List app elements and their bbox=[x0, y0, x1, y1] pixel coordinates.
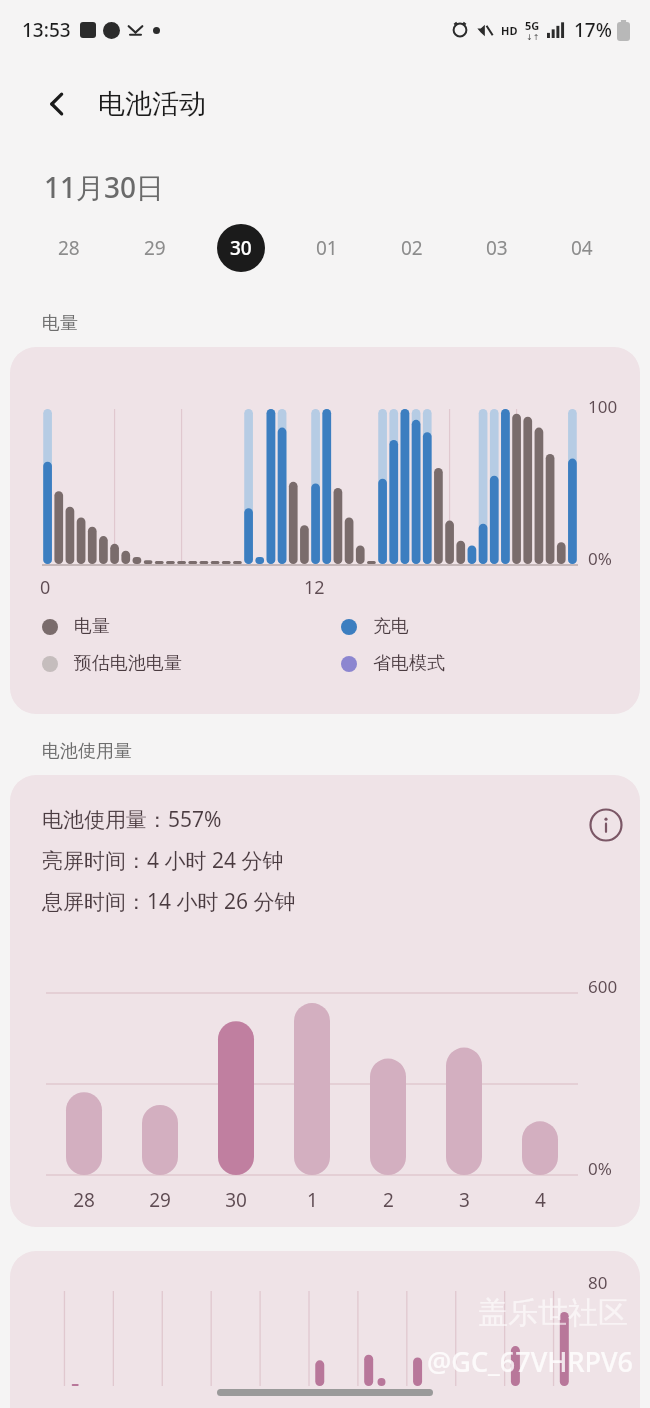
staticText: HD bbox=[501, 23, 518, 38]
button[interactable]: 80 bbox=[10, 1251, 640, 1408]
staticText: 省电模式 bbox=[373, 652, 445, 675]
button[interactable]: 28 bbox=[26, 216, 112, 280]
staticText: 亮屏时间：4 小时 24 分钟 bbox=[42, 846, 284, 875]
staticText: 3 bbox=[459, 1187, 470, 1213]
button[interactable]: Back bbox=[34, 81, 80, 127]
staticText: 0% bbox=[588, 547, 612, 570]
button[interactable]: 02 bbox=[369, 216, 454, 280]
staticText: 2 bbox=[383, 1187, 394, 1213]
staticText: 电池活动 bbox=[98, 87, 206, 121]
staticText: 5G bbox=[525, 18, 540, 33]
staticText: 02 bbox=[401, 235, 423, 261]
staticText: 1 bbox=[307, 1187, 318, 1213]
staticText: 盖乐世社区 bbox=[478, 1294, 628, 1332]
staticText: 28 bbox=[73, 1187, 95, 1213]
staticText: 04 bbox=[571, 235, 593, 261]
staticText: 息屏时间：14 小时 26 分钟 bbox=[42, 887, 296, 916]
button[interactable]: 01 bbox=[284, 216, 369, 280]
button[interactable]: 100 bbox=[10, 347, 640, 714]
staticText: 100 bbox=[588, 395, 618, 418]
staticText: 30 bbox=[230, 235, 252, 261]
staticText: ↓↑ bbox=[526, 33, 540, 42]
staticText: 11月30日 bbox=[44, 168, 165, 206]
button[interactable]: 30 bbox=[198, 216, 284, 280]
staticText: 预估电池电量 bbox=[74, 652, 182, 675]
staticText: @GC_67VHRPV6 bbox=[427, 1343, 634, 1380]
staticText: 17% bbox=[574, 17, 612, 43]
staticText: 80 bbox=[588, 1271, 608, 1294]
button[interactable]: 04 bbox=[539, 216, 624, 280]
staticText: 电池使用量 bbox=[42, 740, 132, 763]
staticText: 600 bbox=[588, 975, 618, 998]
staticText: 29 bbox=[149, 1187, 171, 1213]
staticText: 01 bbox=[316, 235, 338, 261]
staticText: 电池使用量：557% bbox=[42, 805, 222, 834]
staticText: 4 bbox=[535, 1187, 546, 1213]
staticText: 充电 bbox=[373, 615, 409, 638]
staticText: 30 bbox=[225, 1187, 247, 1213]
button[interactable]: 电池使用量：557% bbox=[10, 775, 640, 1227]
staticText: 28 bbox=[58, 235, 80, 261]
button[interactable]: 03 bbox=[454, 216, 539, 280]
button[interactable]: Info bbox=[582, 801, 630, 849]
staticText: 0 bbox=[40, 575, 51, 600]
staticText: 29 bbox=[144, 235, 166, 261]
button[interactable]: 29 bbox=[112, 216, 198, 280]
staticText: 03 bbox=[486, 235, 508, 261]
staticText: 0% bbox=[588, 1157, 612, 1180]
staticText: 电量 bbox=[42, 312, 78, 335]
staticText: 13:53 bbox=[22, 17, 71, 43]
staticText: 电量 bbox=[74, 615, 110, 638]
staticText: 12 bbox=[304, 575, 325, 600]
